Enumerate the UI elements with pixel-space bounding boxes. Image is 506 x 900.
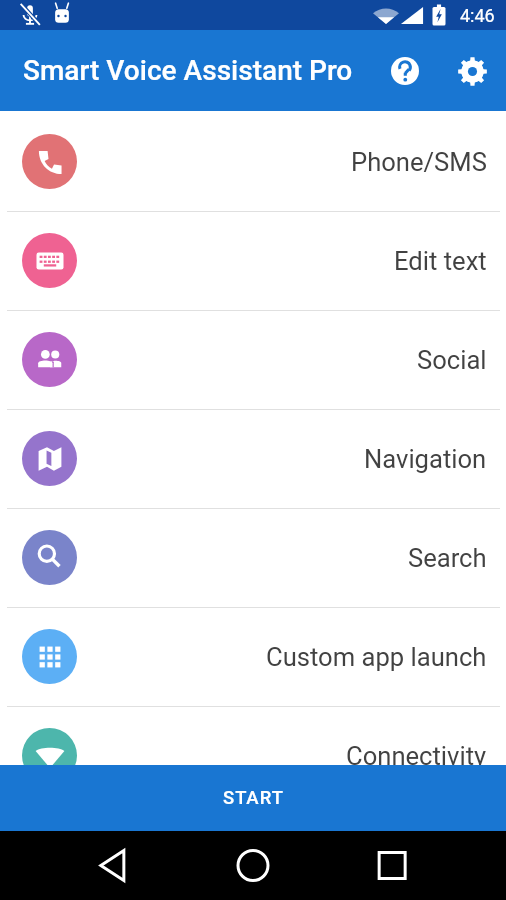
button[interactable]: Settings <box>448 47 496 95</box>
staticText: Smart Voice Assistant Pro <box>23 54 353 87</box>
staticText: Search <box>408 543 487 573</box>
button[interactable]: Search <box>0 509 506 607</box>
button[interactable]: Navigation <box>0 410 506 508</box>
staticText: Phone/SMS <box>351 147 487 177</box>
button[interactable]: Social <box>0 311 506 409</box>
staticText: 4:46 <box>460 5 495 26</box>
staticText: START <box>223 787 284 809</box>
button[interactable]: Phone/SMS <box>0 113 506 211</box>
staticText: Navigation <box>364 444 487 474</box>
button[interactable]: Connectivity <box>0 707 506 805</box>
button[interactable]: Custom app launch <box>0 608 506 706</box>
staticText: Social <box>417 345 487 375</box>
button[interactable]: Edit text <box>0 212 506 310</box>
staticText: Custom app launch <box>266 642 487 672</box>
staticText: Edit text <box>394 246 487 276</box>
button[interactable]: Help <box>381 47 429 95</box>
staticText: Connectivity <box>346 741 487 771</box>
button[interactable]: START <box>0 765 506 831</box>
